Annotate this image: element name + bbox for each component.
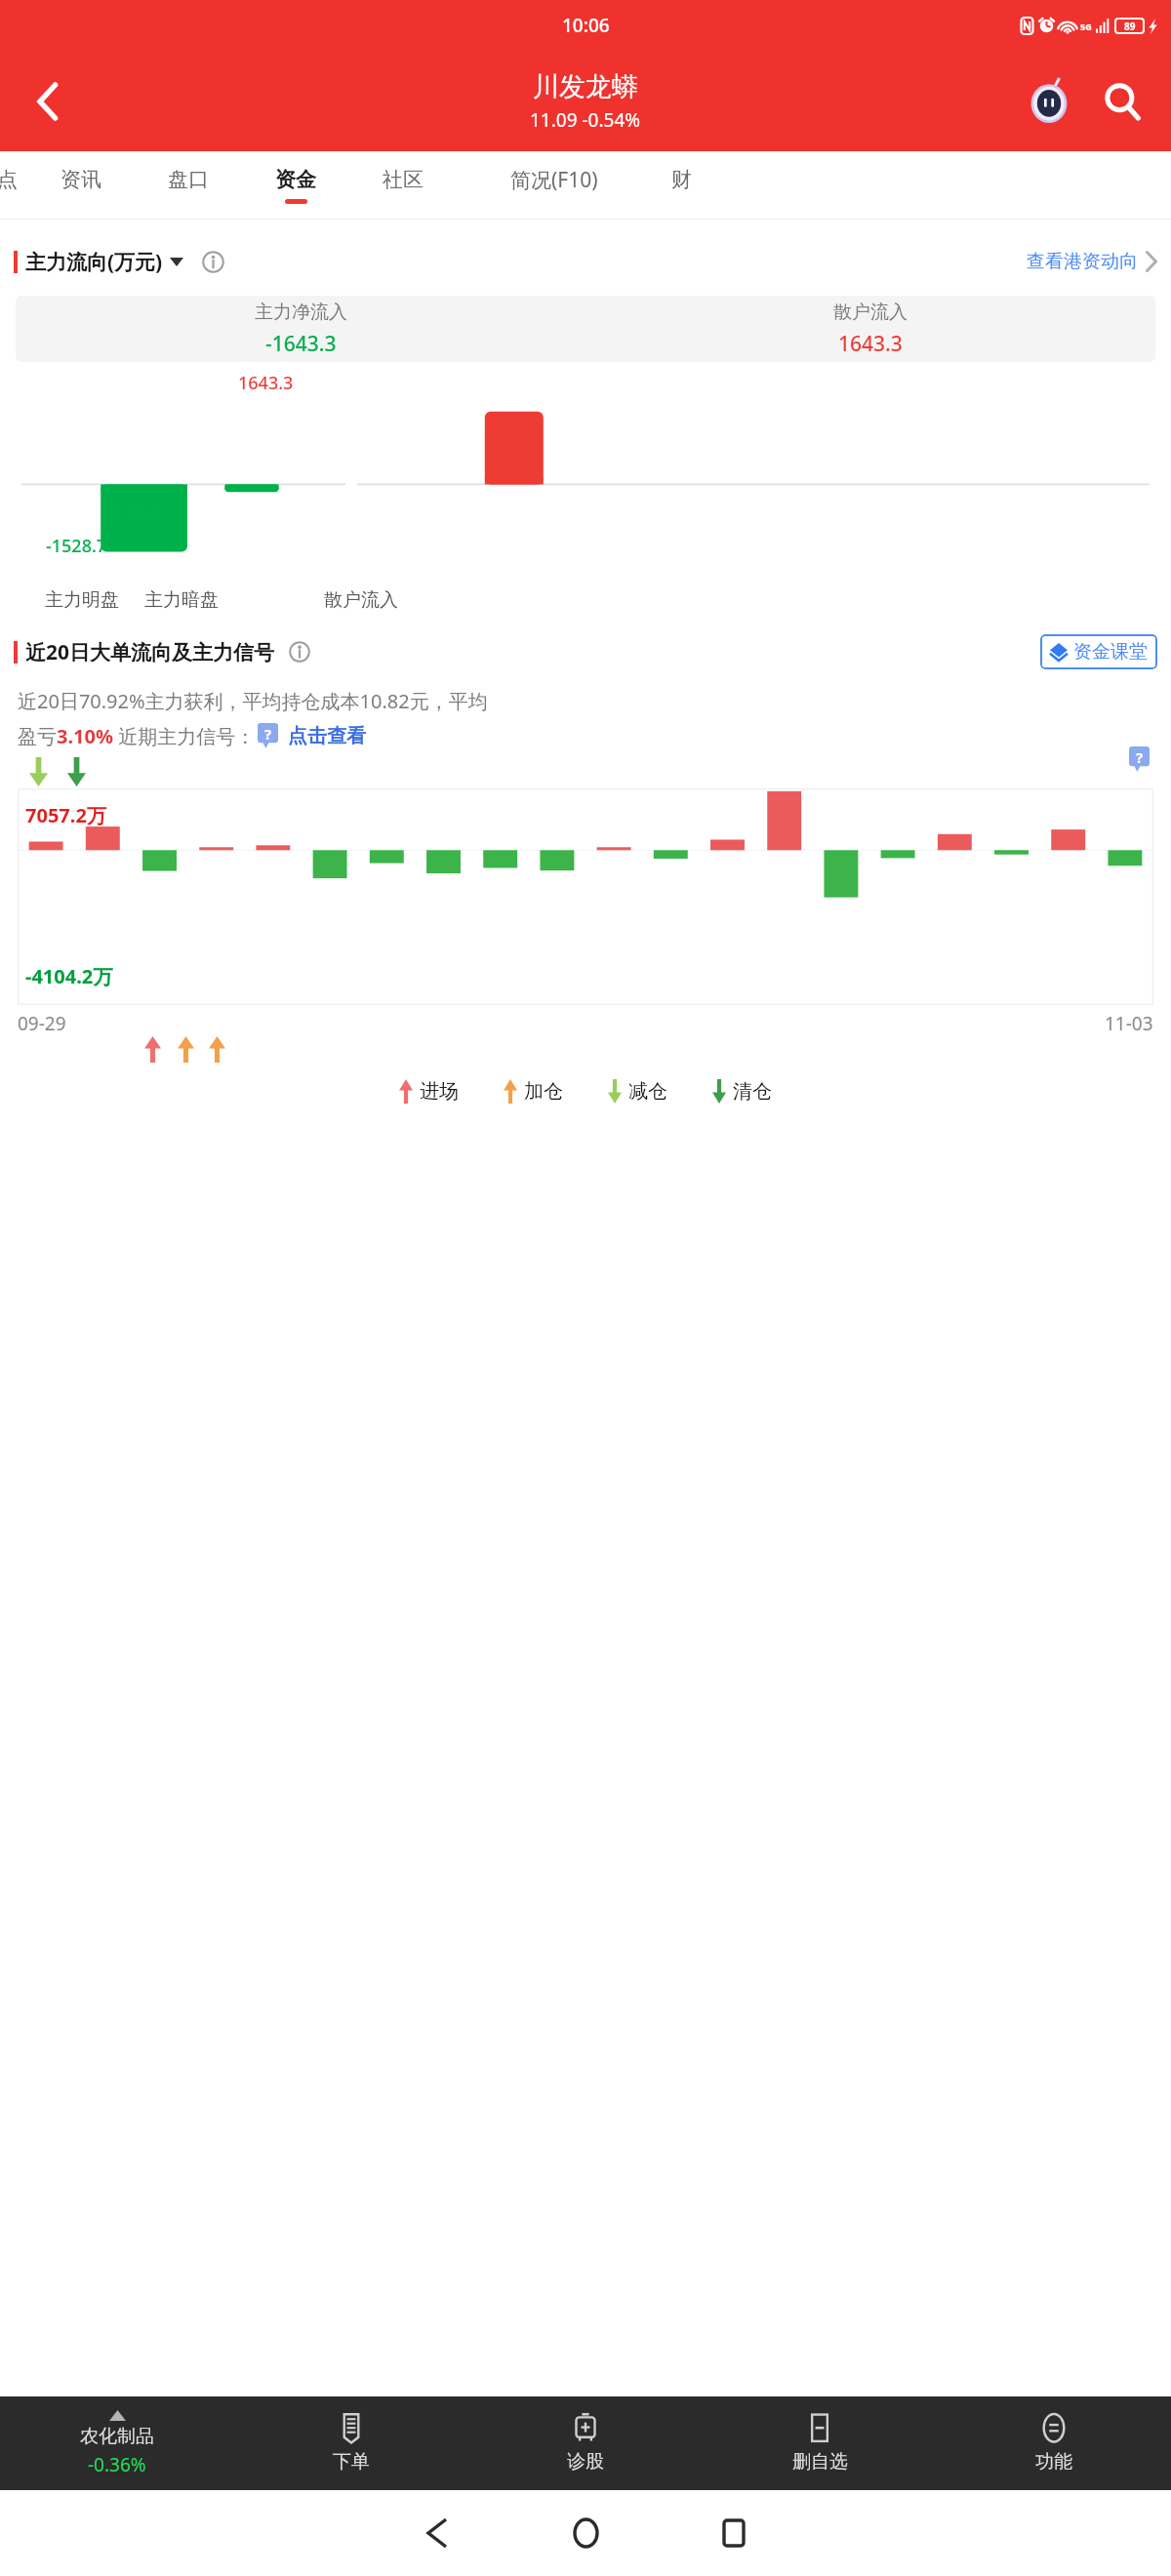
button[interactable]: Info [199,248,226,275]
button[interactable]: Recents [699,2498,769,2568]
staticText: -1528.7 [46,534,107,558]
staticText: 5G [1080,20,1092,32]
staticText: -0.36% [88,2452,146,2477]
button[interactable]: 主力净流入 [16,296,1155,362]
button[interactable]: Back [10,63,86,140]
staticText: 盘口 [168,167,209,192]
staticText: 09-29 [18,1011,66,1036]
button[interactable]: 清仓 [712,1079,772,1104]
staticText: 主力暗盘 [144,588,219,612]
button[interactable]: 盘口 [135,151,242,220]
staticText: 盈亏3.10% 近期主力信号： [18,723,256,749]
button[interactable]: AI assistant [1013,65,1085,138]
button[interactable]: 资讯 [27,151,135,220]
button[interactable]: 诊股 [468,2396,703,2490]
staticText: 主力明盘 [45,588,119,612]
button[interactable]: 近20日大单流向及主力信号 [14,638,275,666]
staticText: 简况(F10) [510,166,598,194]
button[interactable]: 删自选 [703,2396,937,2490]
button[interactable]: Info [287,639,312,664]
staticText: 7057.2万 [25,802,106,828]
staticText: 财 [671,167,692,192]
staticText: 1643.3 [838,330,903,358]
button[interactable]: 查看港资动向 [1027,250,1157,273]
button[interactable]: 点击查看 [288,724,366,748]
staticText: 清仓 [733,1079,772,1104]
staticText: 资讯 [61,167,101,192]
staticText: 川发龙蟒 [533,70,638,103]
button[interactable]: Search [1085,64,1159,139]
button[interactable]: 社区 [349,151,457,220]
staticText: 农化制品 [80,2425,154,2448]
button[interactable]: 主力流向(万元) [14,248,183,276]
button[interactable]: 简况(F10) [457,151,652,220]
button[interactable]: 财 [652,151,710,220]
button[interactable]: 农化制品 [0,2396,234,2490]
staticText: 资金 [275,167,316,192]
button[interactable]: Help [256,722,279,749]
button[interactable]: 资金课堂 [1040,634,1157,669]
staticText: 查看港资动向 [1027,250,1138,273]
button[interactable]: 资金 [242,151,349,220]
button[interactable]: 加仓 [504,1079,563,1104]
staticText: 点 [0,167,18,192]
button[interactable]: 点 [0,151,27,220]
staticText: 10:06 [562,13,610,38]
staticText: -1643.3 [265,330,337,358]
staticText: 主力流向(万元) [25,248,163,276]
staticText: 11.09 -0.54% [530,107,641,133]
staticText: -4104.2万 [25,963,113,989]
button[interactable]: Home [550,2498,621,2568]
button[interactable]: 下单 [234,2396,468,2490]
staticText: 社区 [383,167,424,192]
staticText: 功能 [1035,2450,1072,2474]
staticText: 诊股 [567,2450,604,2474]
staticText: 11-03 [1105,1011,1153,1036]
button[interactable]: Back [402,2498,472,2568]
button[interactable]: Help [1126,744,1151,775]
staticText: 删自选 [792,2450,848,2474]
staticText: ? [264,724,272,744]
staticText: 89 [1124,20,1136,33]
staticText: 下单 [333,2450,370,2474]
staticText: 进场 [420,1079,459,1104]
staticText: 散户流入 [833,301,908,324]
staticText: 近20日70.92%主力获利，平均持仓成本10.82元，平均 [18,688,488,714]
staticText: ? [1136,747,1144,767]
staticText: 近20日大单流向及主力信号 [25,638,275,666]
staticText: 散户流入 [324,588,398,612]
button[interactable]: 功能 [937,2396,1171,2490]
staticText: 资金课堂 [1073,640,1148,664]
staticText: 减仓 [628,1079,667,1104]
button[interactable]: 减仓 [608,1079,667,1104]
staticText: 加仓 [524,1079,563,1104]
button[interactable]: 进场 [399,1079,459,1104]
staticText: 主力净流入 [255,301,347,324]
staticText: 1643.3 [238,371,294,395]
